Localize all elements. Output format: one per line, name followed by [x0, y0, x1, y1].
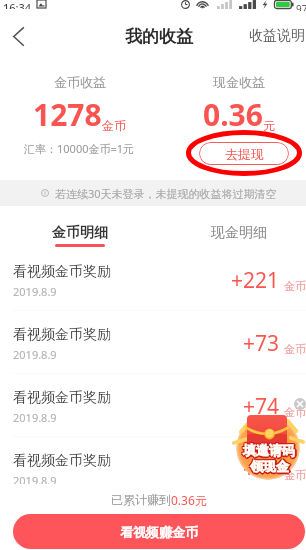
staticText: 领现金	[249, 457, 288, 473]
staticText: 金币	[284, 342, 306, 356]
staticText: 汇率：10000金币=1元	[24, 141, 135, 156]
staticText: 看视频金币奖励	[13, 389, 111, 407]
staticText: 领现金	[251, 459, 290, 475]
staticText: 填邀请码	[243, 441, 295, 457]
staticText: 看视频金币奖励	[13, 508, 111, 526]
staticText: +93	[243, 455, 280, 484]
staticText: 我的收益	[125, 26, 193, 47]
staticText: 领现金	[249, 457, 288, 473]
staticText: 填邀请码	[242, 443, 294, 459]
staticText: 2019.8.9	[13, 529, 57, 544]
staticText: 填邀请码	[244, 441, 296, 457]
button[interactable]: Enter invite code, get cash	[216, 396, 306, 488]
staticText: 现金收益	[213, 74, 265, 90]
staticText: 金币	[284, 405, 306, 419]
button[interactable]: 看视频金币奖励	[0, 437, 306, 500]
staticText: 领现金	[251, 459, 290, 475]
staticText: 0.36元	[171, 492, 207, 508]
staticText: 16:34	[3, 0, 32, 9]
staticText: 2019.8.9	[13, 410, 57, 425]
staticText: 填邀请码	[244, 441, 296, 457]
staticText: 2019.8.9	[13, 284, 57, 299]
staticText: 金币	[284, 279, 306, 293]
staticText: 看视频金币奖励	[13, 263, 111, 281]
button[interactable]: 现金明细	[159, 206, 306, 248]
staticText: 领现金	[249, 459, 288, 475]
staticText: 0.36	[203, 94, 263, 135]
staticText: 金币	[284, 525, 306, 539]
staticText: 填邀请码	[242, 441, 294, 457]
staticText: 填邀请码	[242, 441, 294, 457]
button[interactable]: 去提现	[199, 142, 289, 165]
button[interactable]: Close	[294, 398, 306, 410]
staticText: 领现金	[251, 457, 290, 473]
staticText: 领现金	[249, 458, 288, 474]
button[interactable]: 金币明细	[0, 206, 159, 248]
staticText: 填邀请码	[243, 444, 295, 460]
button[interactable]: 收益说明	[249, 27, 305, 45]
staticText: +221	[231, 266, 280, 295]
staticText: 看视频金币奖励	[13, 452, 111, 470]
staticText: +73	[243, 329, 280, 358]
staticText: 填邀请码	[243, 442, 295, 458]
staticText: 元	[263, 118, 275, 133]
staticText: 去提现	[225, 146, 264, 162]
staticText: 填邀请码	[242, 443, 294, 459]
button[interactable]: 看视频金币奖励	[0, 374, 306, 437]
button[interactable]: 看视频赚金币	[13, 514, 305, 549]
staticText: +40	[243, 512, 280, 541]
button[interactable]: 看视频金币奖励	[0, 311, 306, 374]
staticText: 领现金	[250, 460, 289, 476]
staticText: 填邀请码	[244, 443, 296, 459]
button[interactable]: Back	[0, 18, 36, 54]
staticText: 领现金	[251, 457, 290, 473]
staticText: 金币	[284, 468, 306, 482]
staticText: 2019.8.9	[13, 347, 57, 362]
button[interactable]: 看视频金币奖励	[0, 500, 306, 550]
staticText: 看视频赚金币	[120, 524, 198, 540]
staticText: 金币明细	[52, 224, 108, 242]
staticText: 现金明细	[211, 224, 267, 242]
staticText: 已累计赚到	[111, 492, 171, 507]
staticText: 领现金	[250, 458, 289, 474]
staticText: 1278	[33, 94, 102, 135]
button[interactable]: 看视频金币奖励	[0, 248, 306, 311]
staticText: 金币收益	[54, 74, 106, 90]
staticText: 填邀请码	[244, 443, 296, 459]
staticText: 填邀请码	[242, 442, 294, 458]
staticText: +74	[243, 392, 280, 421]
staticText: 领现金	[250, 457, 289, 473]
staticText: 填邀请码	[245, 442, 297, 458]
staticText: 领现金	[249, 459, 288, 475]
staticText: 2019.8.9	[13, 473, 57, 488]
staticText: 97%	[296, 2, 306, 11]
staticText: 金币	[102, 118, 126, 133]
staticText: 看视频金币奖励	[13, 326, 111, 344]
staticText: 若连续30天未登录，未提现的收益将过期清空	[55, 186, 277, 201]
staticText: 领现金	[252, 458, 291, 474]
